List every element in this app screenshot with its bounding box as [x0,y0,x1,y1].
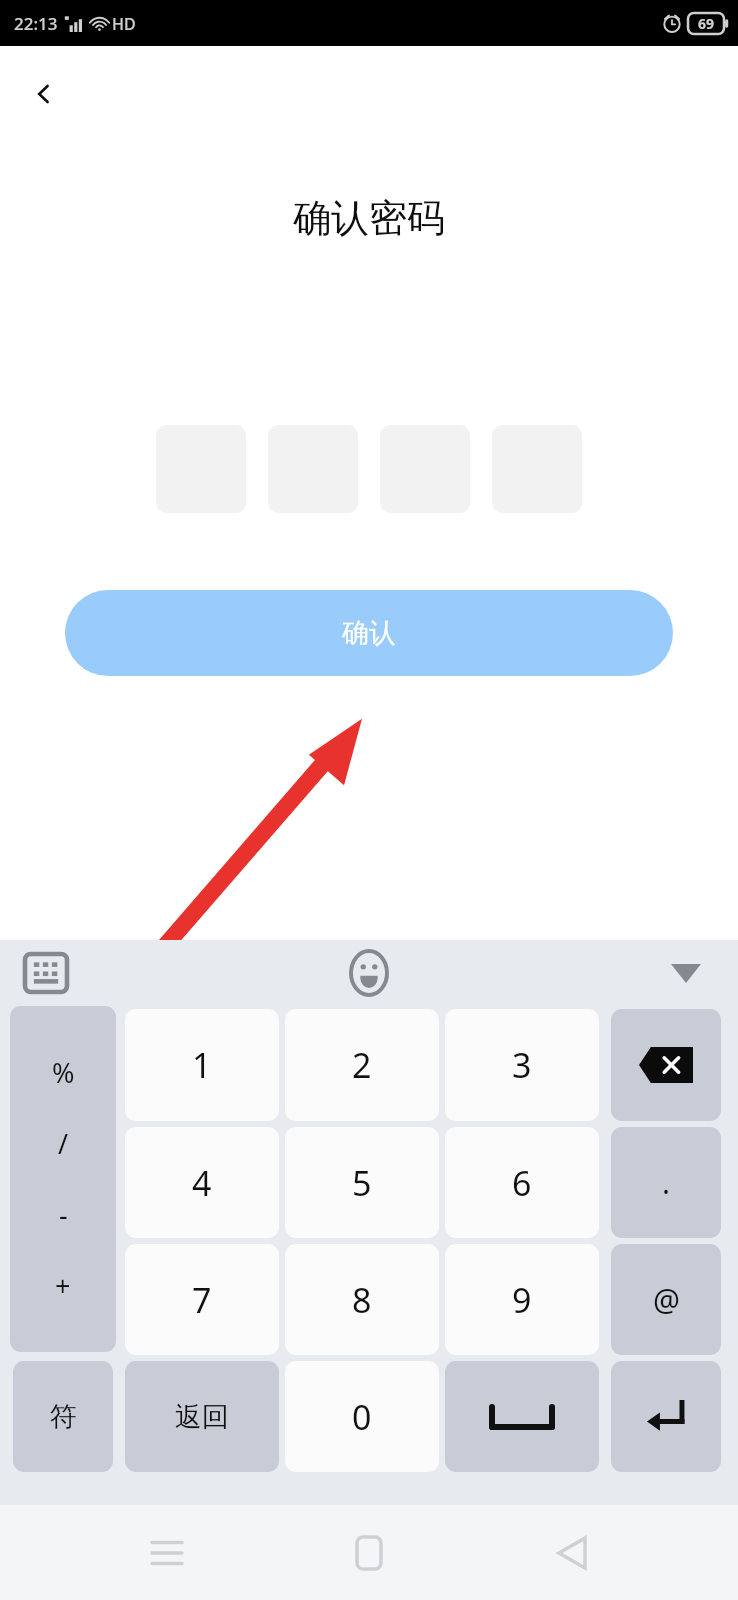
button[interactable]: 6 [445,1127,599,1238]
button[interactable]: 符 [13,1361,113,1472]
button[interactable]: 确认 [65,590,673,676]
button[interactable]: Hide keyboard [660,947,712,999]
button[interactable]: Emoji [343,947,395,999]
staticText: 9 [512,1277,532,1323]
button[interactable]: Back [20,70,68,118]
button[interactable]: . [611,1127,721,1238]
staticText: HD [112,13,136,35]
staticText: 1 [192,1042,212,1088]
button[interactable]: Enter [611,1361,721,1472]
button[interactable]: 1 [125,1009,279,1121]
staticText: 3 [512,1042,532,1088]
button[interactable]: @ [611,1244,721,1355]
staticText: 6 [512,1160,532,1206]
button[interactable]: 3 [445,1009,599,1121]
staticText: / [58,1125,69,1162]
button[interactable]: 9 [445,1244,599,1355]
button[interactable]: 5 [285,1127,439,1238]
button[interactable]: Back [536,1517,608,1589]
staticText: 22:13 [14,12,58,35]
staticText: @ [653,1279,680,1320]
staticText: 0 [352,1394,372,1440]
staticText: 确认 [342,616,396,650]
staticText: - [59,1196,68,1233]
staticText: + [55,1267,71,1304]
button[interactable]: Home [333,1517,405,1589]
staticText: 4 [192,1160,212,1206]
staticText: 5 [352,1160,372,1206]
staticText: 7 [192,1277,212,1323]
staticText: . [662,1162,671,1203]
staticText: 69 [698,14,715,33]
button[interactable]: Recents [131,1517,203,1589]
staticText: 符 [50,1400,77,1434]
button[interactable]: Keyboard layout [20,947,72,999]
button[interactable]: 7 [125,1244,279,1355]
staticText: 2 [352,1042,372,1088]
staticText: 8 [352,1277,372,1323]
staticText: 返回 [175,1400,229,1434]
button[interactable]: Delete [611,1009,721,1121]
button[interactable]: Space [445,1361,599,1472]
staticText: 确认密码 [293,194,445,242]
button[interactable]: 8 [285,1244,439,1355]
button[interactable]: 0 [285,1361,439,1472]
staticText: % [52,1054,75,1091]
button[interactable]: 2 [285,1009,439,1121]
button[interactable]: % [10,1006,116,1352]
button[interactable]: 返回 [125,1361,279,1472]
button[interactable]: 4 [125,1127,279,1238]
